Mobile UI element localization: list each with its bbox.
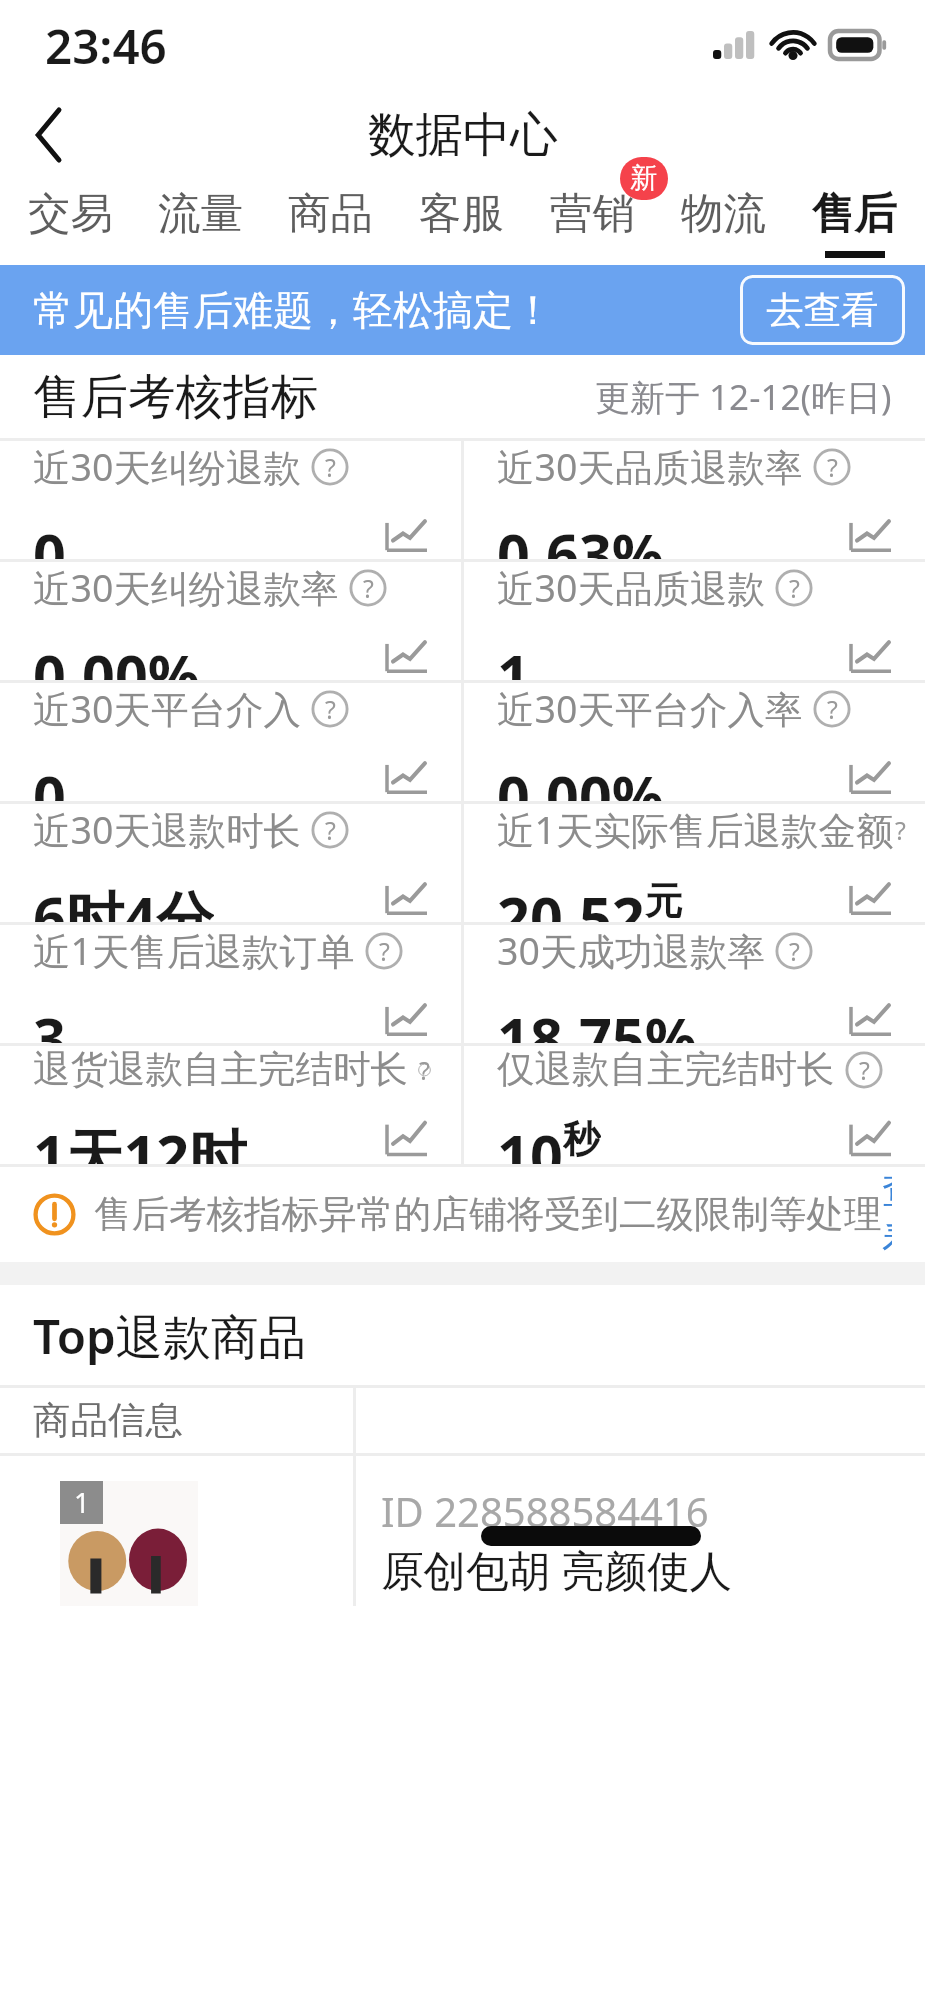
staticText: 0 xyxy=(33,515,66,559)
staticText: ? xyxy=(325,813,336,847)
button[interactable]: 售后考核指标异常的店铺将受到二级限制等处理 xyxy=(33,1167,892,1262)
staticText: 元 xyxy=(645,878,683,919)
staticText: 售后考核指标 xyxy=(33,367,318,427)
button[interactable]: Back xyxy=(0,90,100,180)
staticText: 近30天纠纷退款 xyxy=(33,441,301,492)
button[interactable]: 营销 xyxy=(527,180,658,265)
staticText: 30天成功退款率 xyxy=(497,925,765,976)
button[interactable]: 售后 xyxy=(789,180,920,265)
button[interactable]: 去查看 xyxy=(740,275,905,345)
button[interactable]: 近30天平台介入率 xyxy=(464,683,925,801)
staticText: 近1天售后退款订单 xyxy=(33,925,355,976)
button[interactable]: 近30天退款时长 xyxy=(0,804,461,922)
staticText: ID 228588584416 xyxy=(381,1484,709,1538)
staticText: 1 xyxy=(497,636,530,680)
staticText: Top退款商品 xyxy=(33,1303,306,1368)
button[interactable]: 近30天品质退款 xyxy=(464,562,925,680)
staticText: 查看 xyxy=(882,1167,892,1262)
staticText: 近30天平台介入率 xyxy=(497,683,803,734)
button[interactable]: 近30天纠纷退款 xyxy=(0,441,461,559)
staticText: ? xyxy=(859,1053,870,1087)
staticText: ? xyxy=(827,450,838,484)
button[interactable]: 流量 xyxy=(135,180,265,265)
staticText: 0.00% xyxy=(497,757,664,801)
staticText: 商品 xyxy=(288,187,373,241)
button[interactable]: 近30天品质退款率 xyxy=(464,441,925,559)
staticText: 流量 xyxy=(158,187,243,241)
staticText: ? xyxy=(379,934,390,968)
staticText: 近1天实际售后退款金额 xyxy=(497,804,894,855)
staticText: 近30天退款时长 xyxy=(33,804,301,855)
staticText: ? xyxy=(325,450,336,484)
staticText: 20.52 xyxy=(497,878,645,922)
button[interactable]: 商品 xyxy=(265,180,396,265)
staticText: 常见的售后难题，轻松搞定！ xyxy=(33,285,553,335)
staticText: 原创包胡 亮颜使人 xyxy=(381,1541,733,1599)
button[interactable]: 近1天实际售后退款金额 xyxy=(464,804,925,922)
staticText: 0.63% xyxy=(497,515,664,559)
button[interactable]: 仅退款自主完结时长 xyxy=(464,1046,925,1164)
staticText: 6时4分 xyxy=(33,878,214,922)
staticText: 售后 xyxy=(812,187,897,241)
staticText: 秒 xyxy=(563,1116,601,1161)
staticText: ? xyxy=(789,934,800,968)
button[interactable]: 客服 xyxy=(396,180,527,265)
staticText: 23:46 xyxy=(45,13,167,78)
staticText: 近30天品质退款率 xyxy=(497,441,803,492)
button[interactable]: 30天成功退款率 xyxy=(464,925,925,1043)
staticText: 10 xyxy=(497,1116,563,1164)
staticText: 近30天平台介入 xyxy=(33,683,301,734)
button[interactable]: 退货退款自主完结时长 xyxy=(0,1046,461,1164)
staticText: 物流 xyxy=(681,187,766,241)
staticText: ? xyxy=(789,571,800,605)
staticText: ? xyxy=(325,692,336,726)
staticText: ? xyxy=(419,1053,430,1087)
staticText: 1天12时 xyxy=(33,1116,247,1164)
staticText: 18.75% xyxy=(497,999,697,1043)
staticText: 客服 xyxy=(419,187,504,241)
button[interactable]: 近1天售后退款订单 xyxy=(0,925,461,1043)
button[interactable]: 近30天纠纷退款率 xyxy=(0,562,461,680)
staticText: 商品信息 xyxy=(33,1397,183,1444)
staticText: 去查看 xyxy=(766,287,879,334)
staticText: 交易 xyxy=(28,187,113,241)
staticText: 3 xyxy=(33,999,66,1043)
button[interactable]: 近30天平台介入 xyxy=(0,683,461,801)
staticText: 近30天纠纷退款率 xyxy=(33,562,339,613)
staticText: 0 xyxy=(33,757,66,801)
staticText: 0.00% xyxy=(33,636,200,680)
staticText: 新 xyxy=(630,161,658,196)
staticText: 更新于 12-12(昨日) xyxy=(595,373,892,421)
staticText: 1 xyxy=(74,1484,90,1521)
staticText: 仅退款自主完结时长 xyxy=(497,1046,835,1093)
staticText: 近30天品质退款 xyxy=(497,562,765,613)
staticText: 售后考核指标异常的店铺将受到二级限制等处理 xyxy=(94,1191,882,1238)
staticText: 营销 xyxy=(550,187,635,241)
staticText: 退货退款自主完结时长 xyxy=(33,1046,408,1093)
button[interactable]: 交易 xyxy=(5,180,135,265)
staticText: 数据中心 xyxy=(368,105,558,165)
staticText: ? xyxy=(827,692,838,726)
button[interactable]: 物流 xyxy=(658,180,789,265)
staticText: ? xyxy=(363,571,374,605)
